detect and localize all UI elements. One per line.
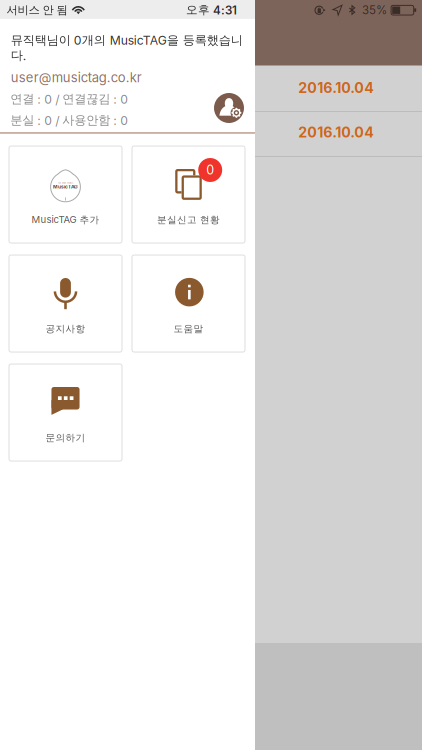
staticText: user@musictag.co.kr [11, 70, 142, 85]
staticText: 2016.10.04 [298, 124, 374, 141]
staticText: 2016.10.04 [298, 79, 374, 96]
button[interactable]: 공지사항 [9, 255, 122, 352]
staticText: 오후 4:31 [186, 3, 237, 17]
button[interactable]: 도움말 [132, 255, 245, 352]
button[interactable]: 2016.10.04 [0, 0, 167, 45]
staticText: 도움말 [173, 323, 203, 335]
button[interactable]: 문의하기 [9, 364, 122, 461]
button[interactable]: MusicTAG [9, 146, 122, 243]
button[interactable]: 분실신고 현황 [132, 146, 245, 243]
staticText: for your music [58, 181, 73, 184]
button[interactable]: 2016.10.04 [0, 0, 167, 45]
staticText: 35% [362, 3, 387, 17]
staticText: 서비스 안 됨 [6, 3, 67, 17]
staticText: 분실신고 현황 [157, 214, 220, 226]
button[interactable]: 계정 설정 [0, 0, 30, 30]
staticText: 문의하기 [45, 432, 85, 444]
staticText: 뮤직택님이 0개의 MusicTAG을 등록했습니 다. [11, 32, 243, 63]
staticText: 분실 : 0 / 사용안함 : 0 [10, 112, 128, 128]
staticText: 공지사항 [45, 323, 85, 335]
staticText: 0 [206, 162, 214, 178]
staticText: MusicTAG 추가 [31, 214, 99, 226]
staticText: MusicTAG [53, 184, 78, 190]
staticText: 연결 : 0 / 연결끊김 : 0 [10, 91, 128, 107]
